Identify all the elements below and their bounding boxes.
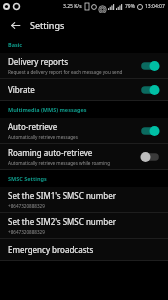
button[interactable]: Delivery reports xyxy=(0,53,168,78)
staticText: +8647320888329 xyxy=(8,229,45,235)
staticText: SMSC Settings xyxy=(8,175,47,182)
button[interactable]: Off xyxy=(140,151,160,163)
staticText: Vibrate xyxy=(8,84,35,95)
button[interactable]: On xyxy=(140,84,160,96)
staticText: Basic xyxy=(8,41,23,48)
staticText: Set the SIM1's SMSC number xyxy=(8,190,116,201)
staticText: Set the SIM2's SMSC number xyxy=(8,216,116,227)
button[interactable]: Roaming auto-retrieve xyxy=(0,144,168,169)
staticText: 3.25 K/s xyxy=(63,3,82,10)
staticText: Emergency broadcasts xyxy=(8,244,94,255)
button[interactable]: Set the SIM1's SMSC number xyxy=(0,187,168,212)
staticText: Auto-retrieve xyxy=(8,121,58,132)
button[interactable]: Back xyxy=(6,16,24,34)
staticText: Automatically retrieve messages xyxy=(8,134,78,140)
button[interactable]: Auto-retrieve xyxy=(0,118,168,143)
staticText: Settings xyxy=(30,19,65,31)
button[interactable]: Vibrate xyxy=(0,79,168,100)
staticText: Roaming auto-retrieve xyxy=(8,147,93,158)
staticText: 13:04:07 xyxy=(145,3,165,10)
staticText: Multimedia (MMS) messages xyxy=(8,106,87,113)
staticText: Automatically retrieve messages while ro… xyxy=(8,160,110,166)
staticText: 79% xyxy=(125,3,135,10)
staticText: Request a delivery report for each messa… xyxy=(8,69,123,75)
button[interactable]: Emergency broadcasts xyxy=(0,239,168,260)
button[interactable]: On xyxy=(140,125,160,137)
staticText: Delivery reports xyxy=(8,56,68,67)
button[interactable]: Set the SIM2's SMSC number xyxy=(0,213,168,238)
staticText: +8647320888329 xyxy=(8,203,45,209)
button[interactable]: On xyxy=(140,60,160,72)
